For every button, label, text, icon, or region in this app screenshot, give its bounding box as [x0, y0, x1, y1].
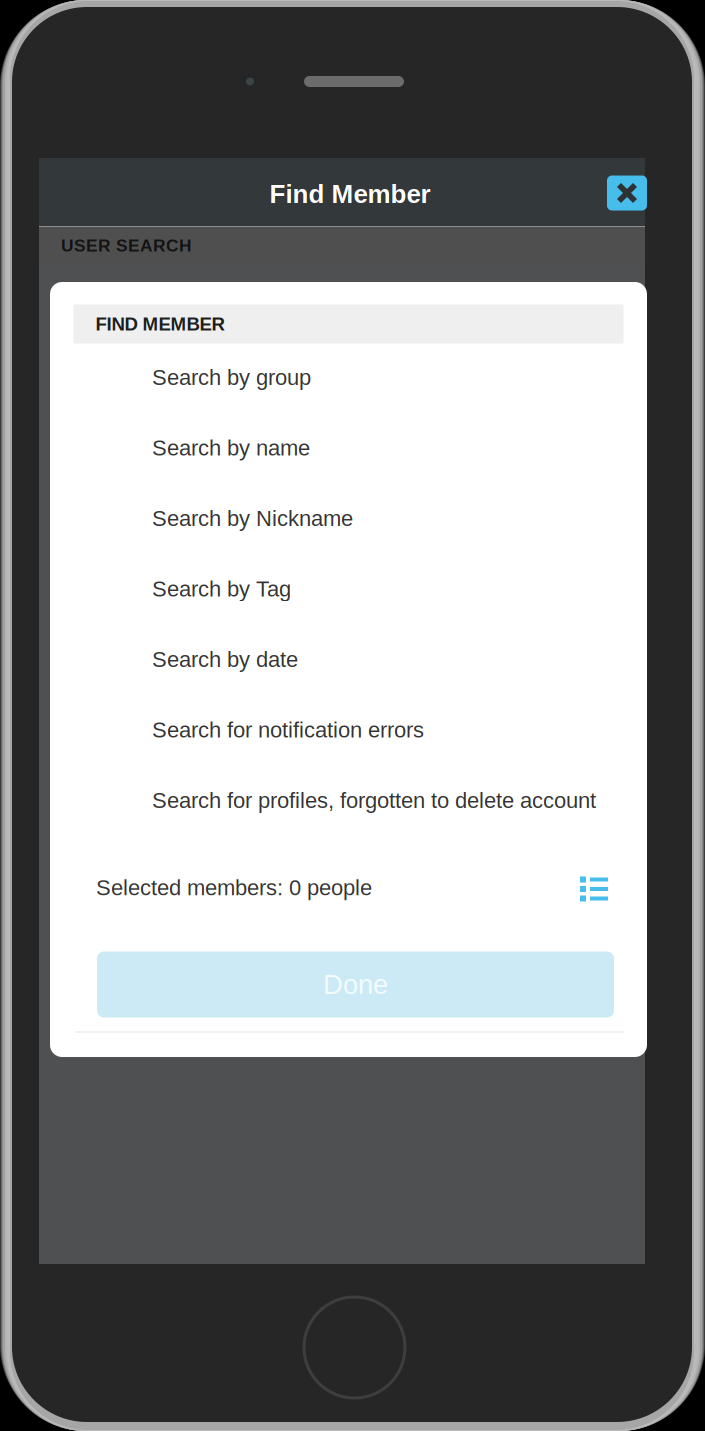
button[interactable]: Search by name	[50, 412, 647, 483]
button[interactable]: Search for profiles, forgotten to delete…	[50, 765, 647, 835]
staticText: Search for profiles, forgotten to delete…	[152, 788, 596, 813]
button[interactable]: Search by group	[50, 342, 647, 412]
staticText: Selected members: 0 people	[96, 875, 372, 900]
staticText: FIND MEMBER	[95, 314, 224, 334]
staticText: USER SEARCH	[61, 236, 192, 255]
staticText: Search by date	[152, 647, 298, 672]
button[interactable]: Search by date	[50, 624, 647, 694]
button[interactable]: Search by Nickname	[50, 483, 647, 553]
button[interactable]: Done	[97, 951, 614, 1017]
staticText: Search by Nickname	[152, 506, 353, 531]
staticText: Done	[323, 969, 388, 1000]
button[interactable]: Close	[606, 174, 646, 209]
button[interactable]: Show selected members list	[572, 865, 616, 909]
staticText: Find Member	[269, 179, 430, 208]
staticText: Search by Tag	[152, 576, 291, 601]
button[interactable]: Search for notification errors	[50, 694, 647, 765]
button[interactable]: Search by Tag	[50, 553, 647, 624]
staticText: Search by name	[152, 435, 310, 460]
staticText: Search for notification errors	[152, 717, 424, 742]
staticText: Search by group	[152, 365, 311, 390]
